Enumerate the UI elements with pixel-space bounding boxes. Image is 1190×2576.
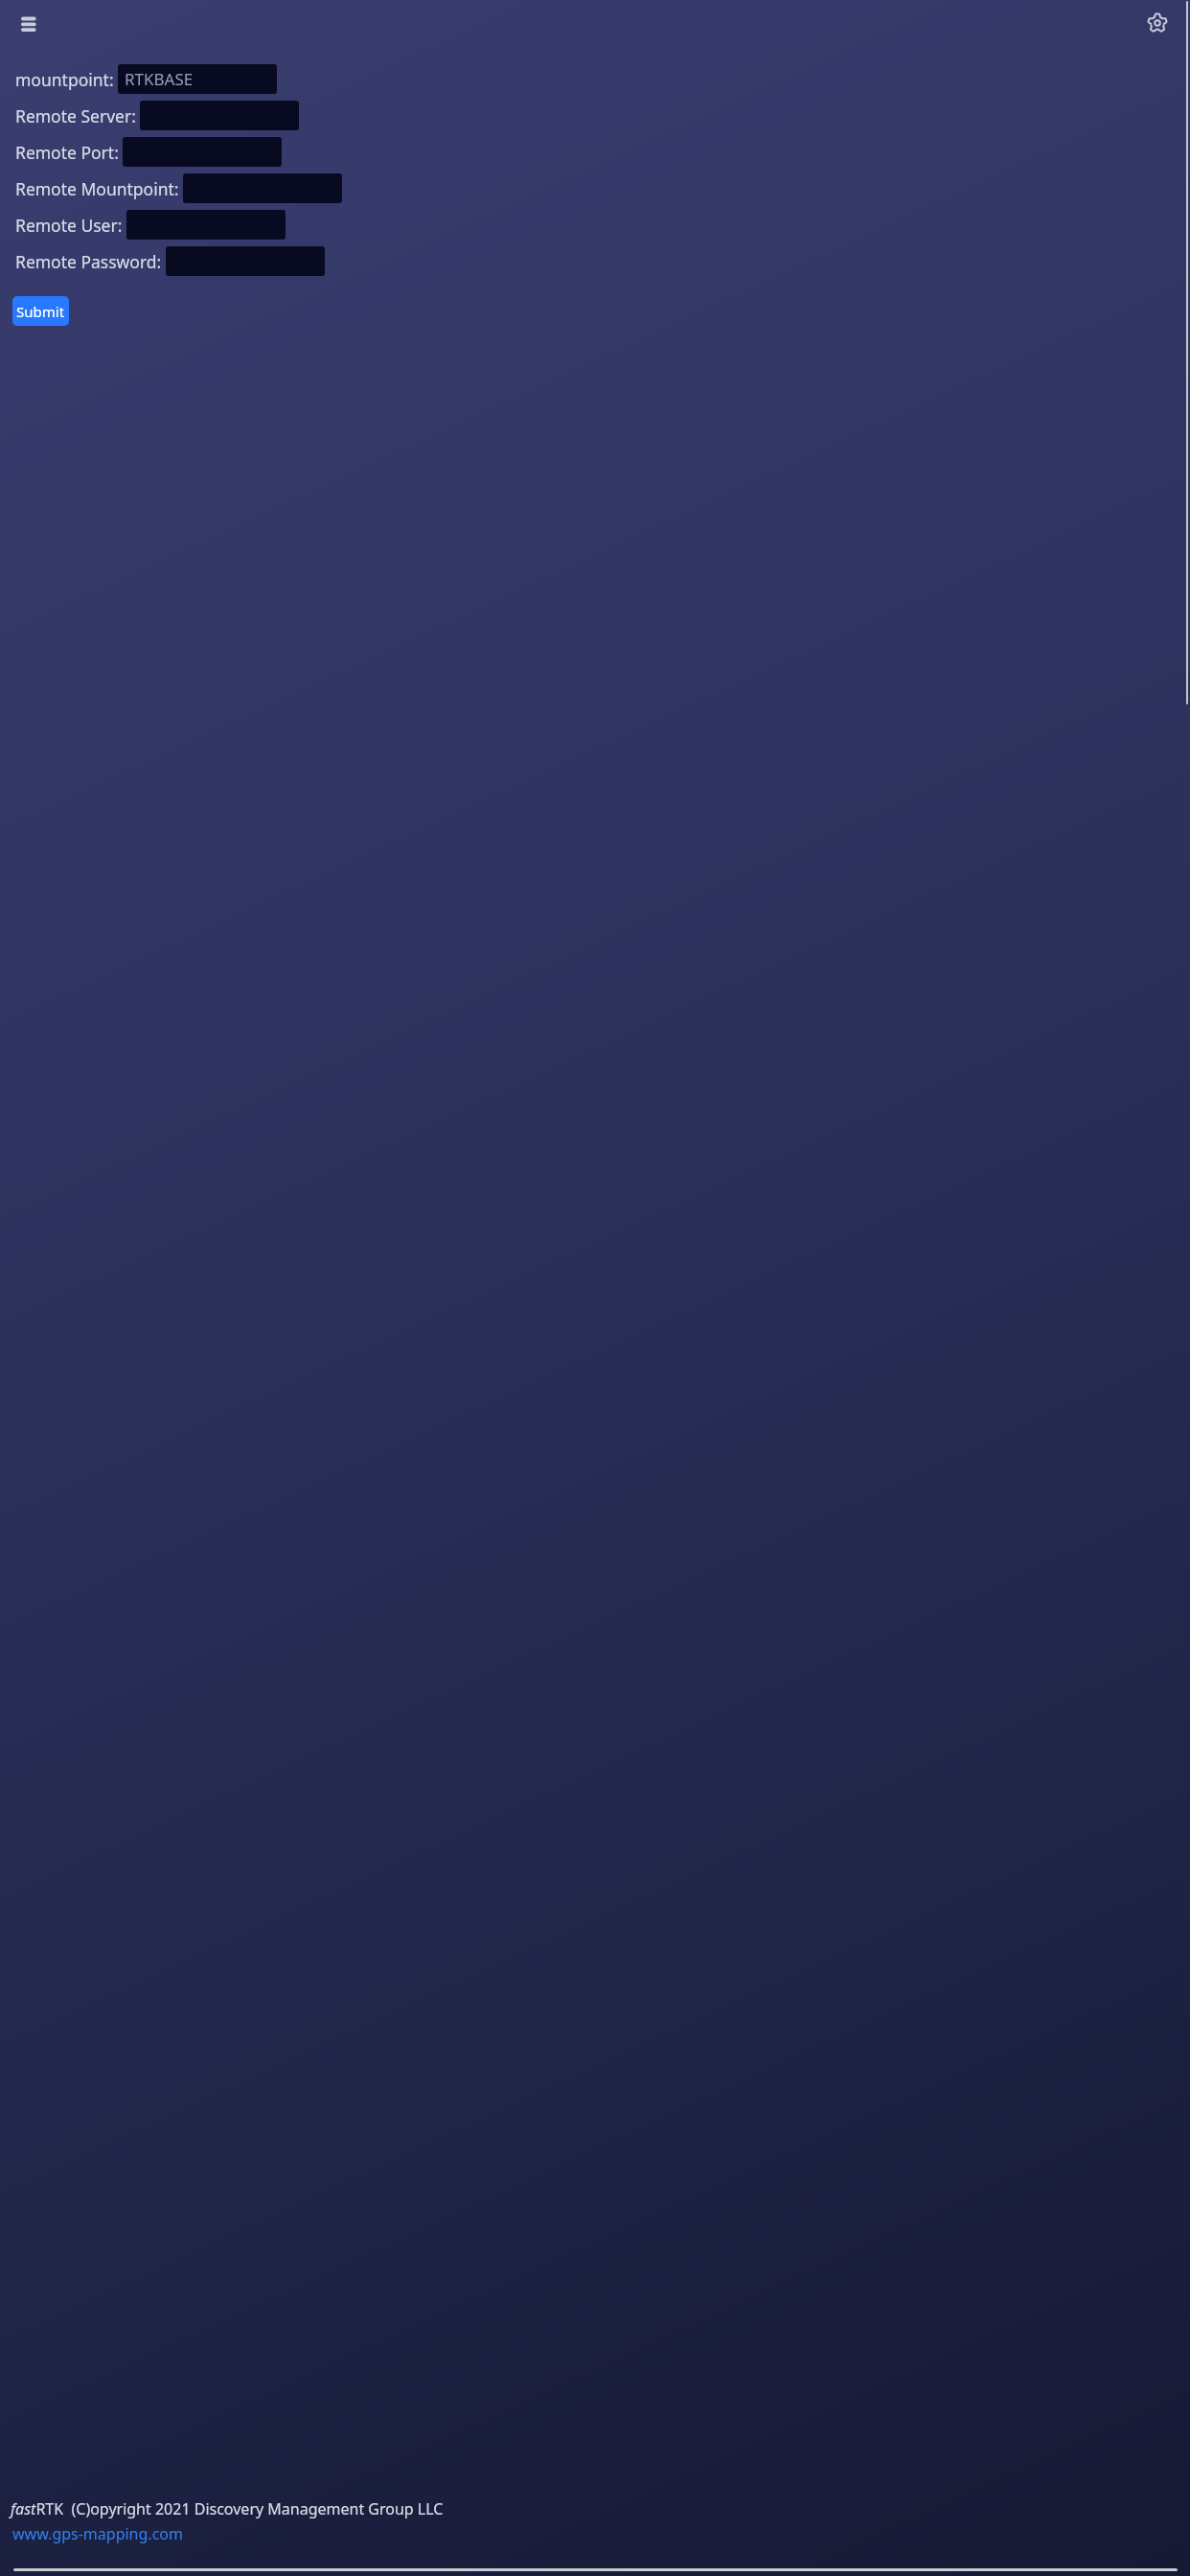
staticText: Remote Mountpoint:	[15, 177, 179, 200]
button[interactable]: Settings	[1146, 11, 1169, 34]
staticText: fastRTK (C)opyright 2021 Discovery Manag…	[11, 2498, 444, 2519]
staticText: Submit	[16, 302, 65, 321]
button[interactable]	[126, 210, 286, 240]
staticText: mountpoint:	[15, 68, 114, 91]
staticText: Remote Password:	[15, 250, 162, 273]
staticText: Remote Server:	[15, 104, 136, 127]
staticText: Remote Port:	[15, 141, 119, 164]
button[interactable]	[183, 173, 342, 203]
button[interactable]	[123, 137, 282, 167]
button[interactable]: Submit	[12, 296, 69, 326]
button[interactable]: www.gps-mapping.com	[12, 2523, 183, 2544]
button[interactable]	[166, 246, 325, 276]
staticText: RTKBASE	[125, 68, 194, 90]
button[interactable]: Menu	[21, 13, 40, 33]
button[interactable]: RTKBASE	[118, 64, 277, 94]
staticText: Remote User:	[15, 214, 123, 237]
